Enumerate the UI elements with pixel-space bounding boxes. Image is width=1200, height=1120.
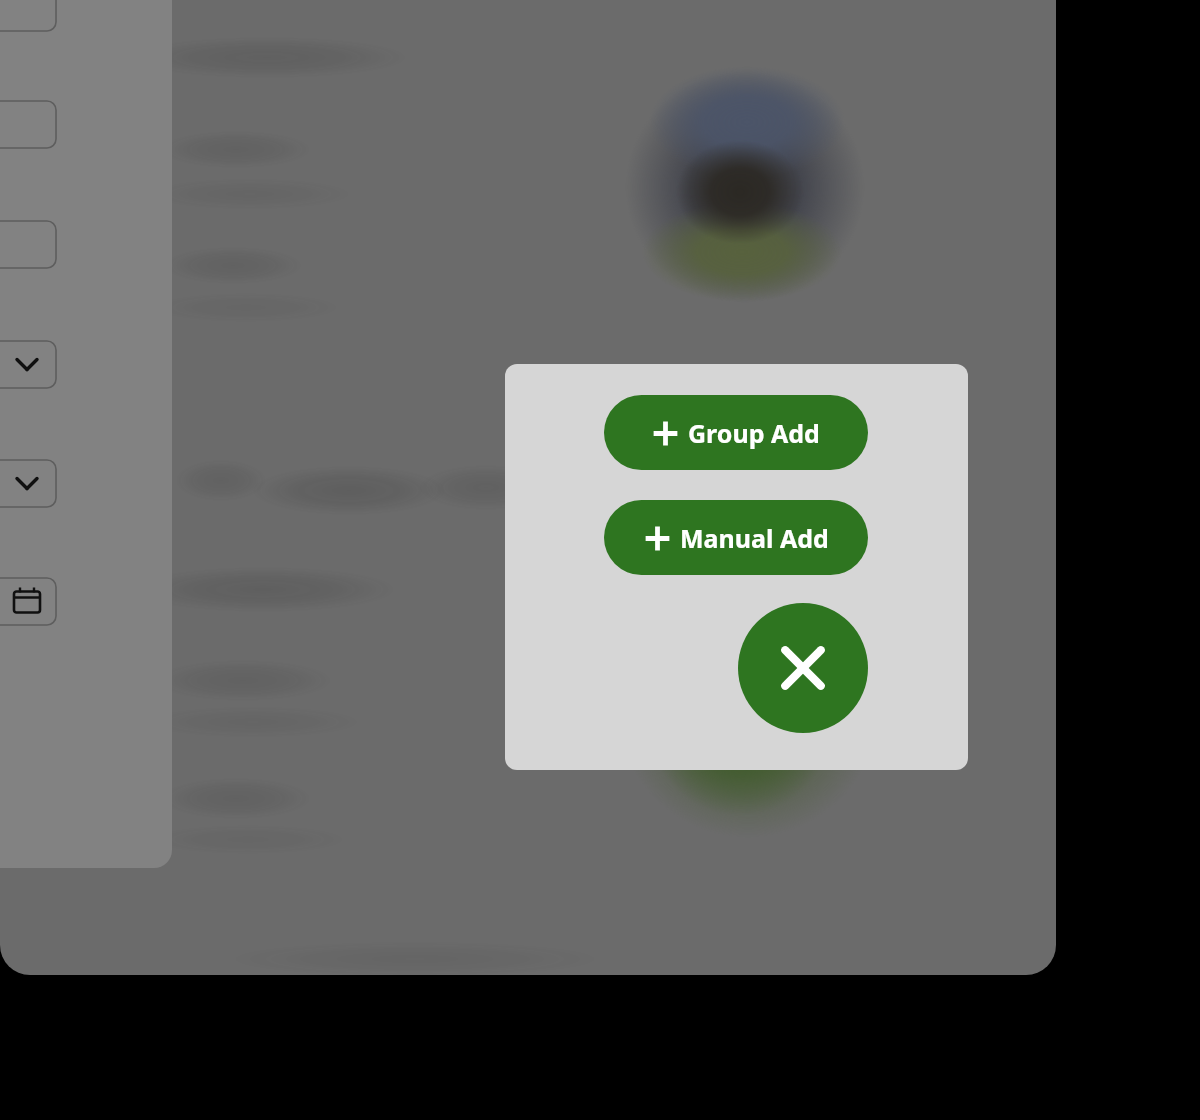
staticText: Group Add	[688, 416, 820, 450]
staticText: Manual Add	[680, 521, 829, 555]
button[interactable]: Manual Add	[604, 500, 868, 575]
button[interactable]: Close	[738, 603, 868, 733]
button[interactable]: Group Add	[604, 395, 868, 470]
